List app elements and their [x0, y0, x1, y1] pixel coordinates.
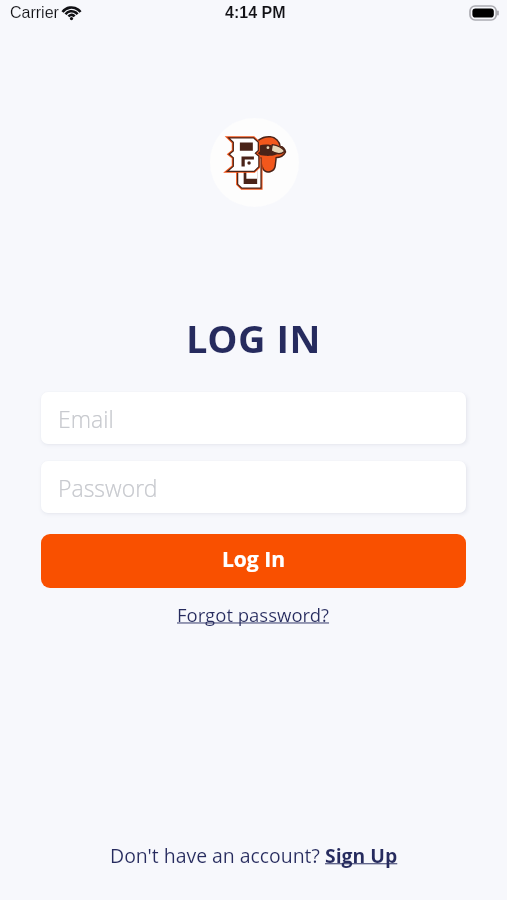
other: BGSU logo — [228, 137, 282, 188]
button[interactable]: Email — [41, 392, 466, 444]
staticText: Carrier — [10, 4, 59, 22]
staticText: Password — [58, 472, 158, 503]
button[interactable]: Forgot password? — [171, 598, 336, 631]
staticText: 4:14 PM — [225, 4, 286, 22]
staticText: Email — [58, 403, 114, 434]
staticText: LOG IN — [0, 312, 507, 364]
button[interactable]: Sign Up — [325, 842, 398, 868]
staticText: Log In — [222, 545, 285, 574]
button[interactable]: Log In — [41, 534, 466, 588]
button[interactable]: Password — [41, 461, 466, 513]
staticText: Don't have an account? — [110, 842, 325, 868]
